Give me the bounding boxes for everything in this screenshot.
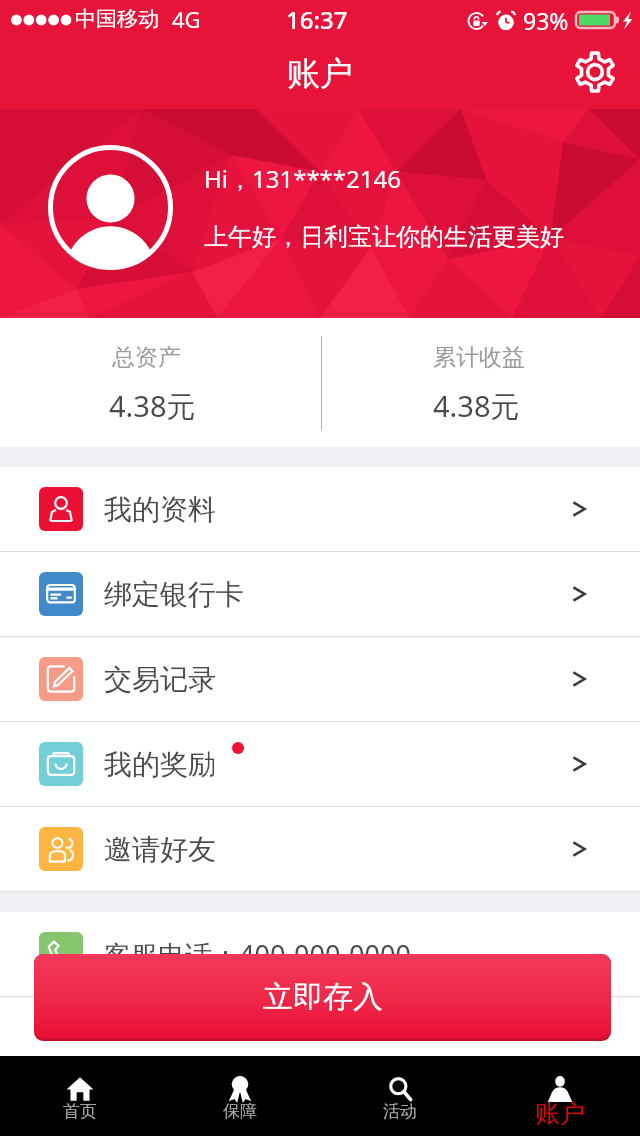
button[interactable]: Settings — [568, 48, 622, 102]
button[interactable]: 绑定银行卡 — [0, 552, 640, 637]
button[interactable]: 首页 — [0, 1056, 160, 1136]
staticText: 93% — [523, 5, 569, 36]
staticText: 绑定银行卡 — [104, 577, 244, 612]
staticText: 累计收益 — [433, 343, 525, 372]
button[interactable]: 立即存入 — [34, 954, 611, 1041]
staticText: 我的资料 — [104, 492, 216, 527]
staticText: 账户 — [535, 1098, 585, 1129]
button[interactable]: 保障 — [160, 1056, 320, 1136]
staticText: 邀请好友 — [104, 832, 216, 867]
button[interactable]: 客服电话：400-000-0000 — [0, 912, 640, 997]
button[interactable]: 交易记录 — [0, 637, 640, 722]
staticText: 活动 — [383, 1101, 417, 1122]
staticText: Hi，131****2146 — [204, 162, 401, 195]
button[interactable]: 我的资料 — [0, 467, 640, 552]
staticText: 4.38元 — [433, 386, 520, 426]
staticText: 总资产 — [112, 343, 181, 372]
staticText: 保障 — [223, 1101, 257, 1122]
staticText: 16:37 — [286, 3, 348, 36]
button[interactable]: 活动 — [320, 1056, 480, 1136]
staticText: 立即存入 — [263, 978, 383, 1016]
button[interactable]: 我的奖励 — [0, 722, 640, 807]
staticText: 中国移动 — [75, 6, 159, 32]
button[interactable]: 账户 — [480, 1056, 640, 1136]
staticText: 上午好，日利宝让你的生活更美好 — [204, 222, 564, 252]
staticText: 首页 — [63, 1101, 97, 1122]
staticText: 交易记录 — [104, 662, 216, 697]
button[interactable]: 邀请好友 — [0, 807, 640, 892]
staticText: 4G — [172, 4, 201, 34]
staticText: 我的奖励 — [104, 747, 216, 782]
staticText: 客服电话：400-000-0000 — [104, 936, 411, 973]
staticText: 4.38元 — [109, 386, 196, 426]
staticText: 账户 — [287, 53, 353, 95]
